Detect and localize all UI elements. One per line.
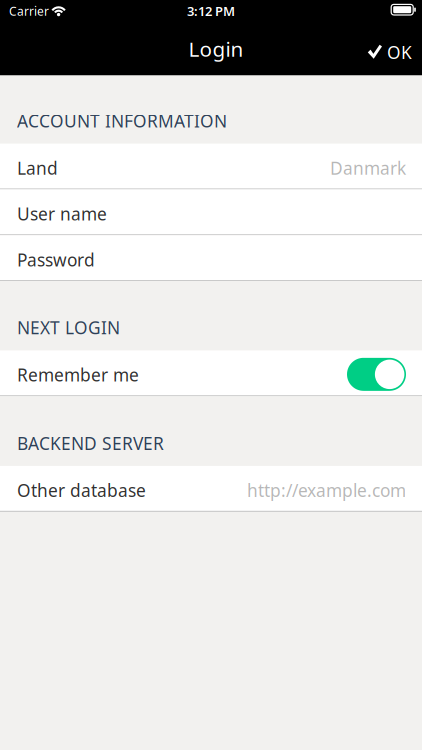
staticText: Login [188,35,243,63]
button[interactable]: Other database [0,466,422,512]
staticText: BACKEND SERVER [17,431,164,455]
staticText: ACCOUNT INFORMATION [17,109,227,133]
staticText: Remember me [17,363,139,387]
staticText: NEXT LOGIN [17,316,120,339]
staticText: Land [17,156,58,180]
staticText: Password [17,248,95,271]
staticText: OK [387,40,412,64]
staticText: Carrier [9,3,49,19]
staticText: Other database [17,479,146,502]
button[interactable]: Remember me [0,350,422,396]
staticText: Danmark [330,156,406,180]
button[interactable]: Land [0,144,422,189]
button[interactable]: OK [352,29,422,74]
staticText: http://example.com [247,479,406,502]
staticText: User name [17,202,107,226]
button[interactable]: Password [0,235,422,281]
staticText: 3:12 PM [187,2,235,20]
button[interactable]: User name [0,189,422,235]
